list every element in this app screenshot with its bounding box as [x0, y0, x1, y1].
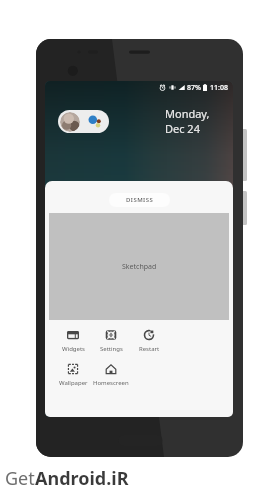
staticText: Sketchpad — [122, 262, 157, 272]
button[interactable]: DISMISS — [109, 193, 170, 207]
staticText: 11:08 — [210, 83, 228, 93]
staticText: Settings — [100, 345, 123, 353]
staticText: DISMISS — [126, 196, 154, 204]
staticText: Wallpaper — [59, 379, 88, 387]
button[interactable]: Settings — [92, 329, 130, 353]
staticText: Homescreen — [93, 379, 129, 387]
staticText: Restart — [139, 345, 160, 353]
staticText: Dec 24 — [165, 121, 200, 136]
button[interactable]: Google search — [58, 110, 109, 133]
button[interactable]: Homescreen — [92, 363, 130, 387]
button[interactable]: Widgets — [54, 329, 92, 353]
staticText: 87% — [187, 83, 201, 93]
staticText: Monday, — [165, 106, 210, 121]
staticText: Android.iR — [35, 466, 129, 491]
button[interactable]: Restart — [130, 329, 168, 353]
button[interactable]: Wallpaper — [54, 363, 92, 387]
staticText: Widgets — [62, 345, 85, 353]
staticText: Get — [5, 466, 35, 491]
